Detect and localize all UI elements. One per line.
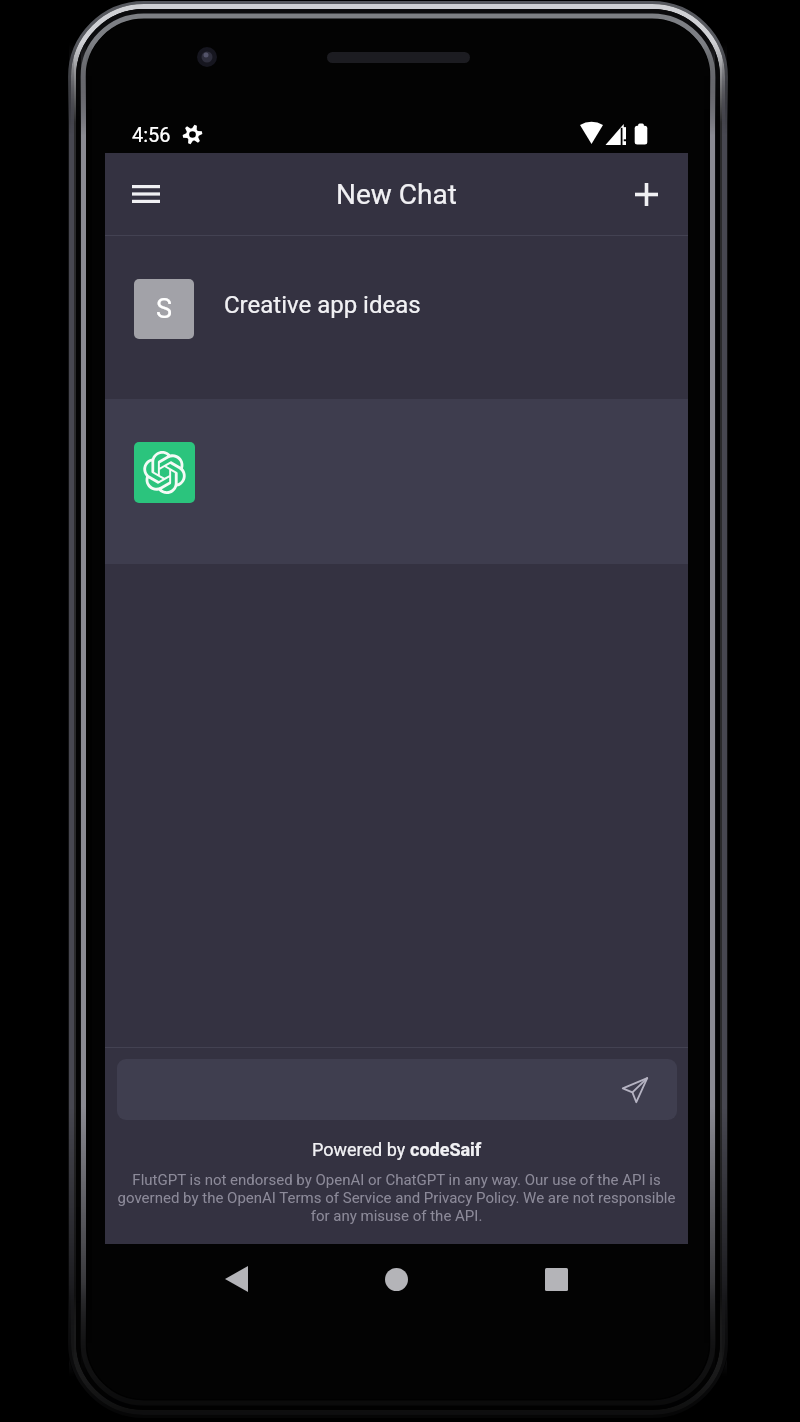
staticText: Powered by [312, 1139, 410, 1160]
staticText: FlutGPT is not endorsed by OpenAI or Cha… [116, 1171, 677, 1225]
button[interactable]: Home [374, 1257, 418, 1301]
staticText: S [156, 293, 173, 325]
staticText: New Chat [336, 178, 457, 211]
staticText: codeSaif [410, 1139, 482, 1160]
staticText: 4:56 [132, 123, 171, 146]
button[interactable]: Send [615, 1070, 655, 1110]
button[interactable]: Send [117, 1059, 677, 1120]
button[interactable]: New chat [618, 166, 674, 222]
button[interactable]: S [105, 236, 688, 399]
button[interactable]: Recent apps [534, 1257, 578, 1301]
button[interactable] [105, 399, 688, 564]
button[interactable]: Menu [118, 166, 174, 222]
button[interactable]: Back [214, 1257, 258, 1301]
staticText: Creative app ideas [224, 291, 421, 319]
